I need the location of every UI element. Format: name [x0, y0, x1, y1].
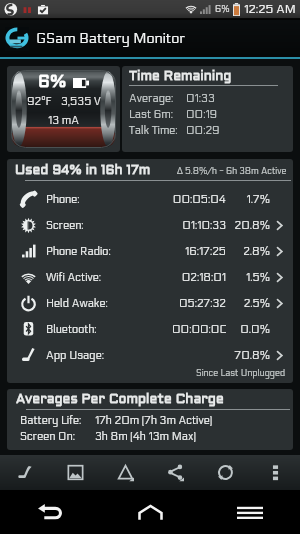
button[interactable]: Bluetooth:	[7, 316, 293, 342]
staticText: 00:05:04	[172, 193, 226, 206]
staticText: 05:27:32	[172, 297, 226, 310]
staticText: Since Last Unplugged	[196, 368, 286, 379]
staticText: App Usage:	[46, 349, 172, 362]
staticText: 01:33	[186, 92, 215, 105]
staticText: Bluetooth:	[46, 323, 172, 336]
staticText: 2.5%	[234, 297, 270, 310]
staticText: Averages Per Complete Charge	[16, 394, 224, 406]
button[interactable]: GSam Battery Monitor	[0, 20, 300, 57]
staticText: Battery Life:	[20, 414, 95, 427]
staticText: 00:19	[186, 108, 218, 121]
staticText: 20.8%	[234, 219, 270, 232]
staticText: 12:25 AM	[244, 2, 296, 16]
staticText: 00:00:00	[172, 323, 226, 336]
staticText: Phone:	[46, 193, 172, 206]
staticText: Screen:	[46, 219, 172, 232]
staticText: 6%	[38, 75, 67, 91]
button[interactable]: 6%	[7, 66, 120, 152]
staticText: 02:18:01	[172, 271, 226, 284]
staticText: Last 6m:	[129, 108, 186, 121]
button[interactable]: Stats	[100, 455, 150, 490]
staticText: 3,535 V	[61, 95, 101, 108]
staticText: Time Remaining	[129, 71, 232, 83]
button[interactable]: Screenshot	[50, 455, 100, 490]
button[interactable]: Held Awake:	[7, 290, 293, 316]
button[interactable]: Averages Per Complete Charge	[7, 389, 293, 450]
staticText: 6%	[215, 4, 230, 15]
button[interactable]: Back	[0, 490, 100, 534]
staticText: 17h 20m (7h 3m Active)	[95, 414, 213, 427]
button[interactable]: Wifi Active:	[7, 264, 293, 290]
button[interactable]: Share	[150, 455, 200, 490]
button[interactable]: More options	[250, 455, 300, 490]
staticText: 13 mA	[48, 114, 79, 127]
staticText: 3h 8m (4h 13m Max)	[95, 430, 196, 443]
button[interactable]: Phone Radio:	[7, 238, 293, 264]
staticText: Held Awake:	[46, 297, 172, 310]
staticText: 0.0%	[234, 323, 270, 336]
button[interactable]: Refresh	[200, 455, 250, 490]
staticText: 1.5%	[234, 271, 270, 284]
staticText: GSam Battery Monitor	[36, 30, 186, 47]
staticText: Phone Radio:	[46, 245, 172, 258]
button[interactable]: Time Remaining	[122, 66, 293, 152]
staticText: Talk Time:	[129, 124, 186, 137]
staticText: Average:	[129, 92, 186, 105]
staticText: 1.7%	[234, 193, 270, 206]
staticText: Used 94% in 16h 17m	[15, 165, 151, 177]
staticText: Wifi Active:	[46, 271, 172, 284]
staticText: 01:10:33	[172, 219, 226, 232]
staticText: 2.8%	[234, 245, 270, 258]
button[interactable]: Home	[100, 490, 200, 534]
staticText: Δ 5.8%/h - 6h 38m Active	[177, 164, 287, 176]
button[interactable]: App Usage:	[7, 342, 293, 368]
button[interactable]: Screen:	[7, 212, 293, 238]
button[interactable]: Phone:	[7, 186, 293, 212]
staticText: 16:17:25	[172, 245, 226, 258]
button[interactable]: Recent apps	[200, 490, 300, 534]
staticText: Screen On:	[20, 430, 95, 443]
button[interactable]: Chart	[0, 455, 50, 490]
staticText: 70.8%	[234, 349, 270, 362]
staticText: 92°F	[27, 95, 52, 108]
staticText: 00:29	[186, 124, 220, 137]
